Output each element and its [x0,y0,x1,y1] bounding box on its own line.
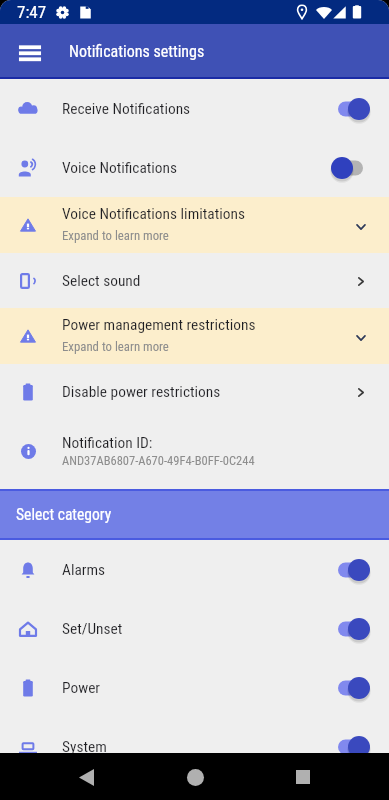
button[interactable]: Receive Notifications [0,79,389,138]
staticText: Expand to learn more [62,339,169,354]
button[interactable]: Voice Notifications [0,138,389,197]
staticText: Select category [16,506,112,524]
staticText: Set/Unset [62,620,331,638]
staticText: Notifications settings [69,42,205,61]
button[interactable]: Power management restrictions [0,308,389,364]
staticText: Voice Notifications limitations [62,205,245,223]
button[interactable]: Back [64,755,108,799]
staticText: Alarms [62,561,331,579]
button[interactable]: Voice Notifications limitations [0,197,389,253]
button[interactable]: Set/Unset [0,599,389,658]
staticText: Power [62,679,331,697]
staticText: Receive Notifications [62,100,331,118]
staticText: Notification ID: [62,434,153,452]
staticText: 7:47 [17,2,47,22]
button[interactable]: Open navigation menu [8,30,52,74]
button[interactable]: Notification ID: [0,419,389,489]
staticText: Expand to learn more [62,228,169,243]
button[interactable]: System [0,717,389,776]
button[interactable]: Home [173,755,217,799]
staticText: Power management restrictions [62,316,256,334]
button[interactable]: Alarms [0,540,389,599]
button[interactable]: Select sound [0,253,389,308]
button[interactable]: Recent apps [281,755,325,799]
staticText: Select sound [62,272,349,290]
staticText: AND37AB6807-A670-49F4-B0FF-0C244 [62,453,255,468]
staticText: Voice Notifications [62,159,331,177]
button[interactable]: Select category [0,489,389,540]
button[interactable]: Disable power restrictions [0,364,389,419]
staticText: System [62,738,331,756]
staticText: Disable power restrictions [62,383,349,401]
button[interactable]: Power [0,658,389,717]
